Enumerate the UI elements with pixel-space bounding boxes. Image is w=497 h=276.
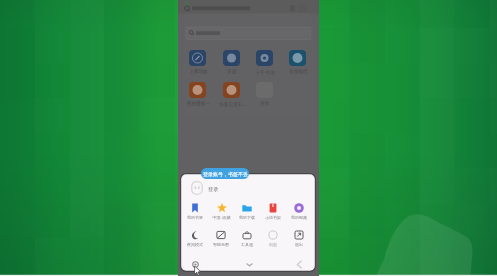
button[interactable]: Account avatar	[191, 181, 203, 195]
staticText: 登录	[208, 186, 219, 193]
staticText: 我的书签	[187, 215, 203, 220]
button[interactable]: 退出	[287, 230, 311, 250]
staticText: 我的下载	[239, 215, 255, 220]
button[interactable]: 智能无图	[209, 230, 233, 250]
staticText: 百度	[227, 69, 237, 75]
button[interactable]: 我的书签	[183, 203, 207, 223]
staticText: 搜狗搜索一	[187, 101, 210, 107]
staticText: 智能无图	[213, 242, 229, 247]
button[interactable]: 登录账号，书签不丢	[201, 168, 249, 179]
staticText: 退出	[295, 242, 303, 247]
staticText: 我的视频	[291, 215, 307, 220]
button[interactable]: 小说书架	[261, 203, 285, 223]
button[interactable]: Share	[292, 257, 306, 271]
button[interactable]: Settings	[188, 257, 202, 271]
button[interactable]: Collapse	[242, 257, 256, 271]
staticText: 更多	[260, 101, 270, 107]
staticText: 十字·书途	[255, 69, 275, 75]
button[interactable]: App shortcut	[256, 50, 273, 66]
button[interactable]: 我的下载	[235, 203, 259, 223]
button[interactable]: 工具箱	[235, 230, 259, 250]
button[interactable]: 登录	[208, 186, 219, 193]
button[interactable]: 夜间模式	[183, 230, 207, 250]
staticText: 刷新	[269, 242, 277, 247]
staticText: 工具箱	[241, 242, 253, 247]
button[interactable]: App shortcut	[223, 50, 240, 66]
staticText: 登录账号，书签不丢	[203, 171, 248, 177]
button[interactable]: App shortcut	[289, 50, 306, 66]
button[interactable]: 我的视频	[287, 203, 311, 223]
button[interactable]: 刷新	[261, 230, 285, 250]
staticText: 上网导航	[189, 69, 208, 75]
staticText: 快看王清车…	[219, 101, 246, 107]
staticText: 百度贴吧	[289, 69, 308, 75]
button[interactable]: App shortcut	[223, 82, 240, 98]
button[interactable]: App shortcut	[189, 50, 206, 66]
staticText: 小说书架	[265, 215, 281, 220]
staticText: 中国..收藏	[212, 215, 231, 220]
staticText: 夜间模式	[187, 242, 203, 247]
button[interactable]: 中国..收藏	[209, 203, 233, 223]
button[interactable]: App shortcut	[189, 82, 206, 98]
